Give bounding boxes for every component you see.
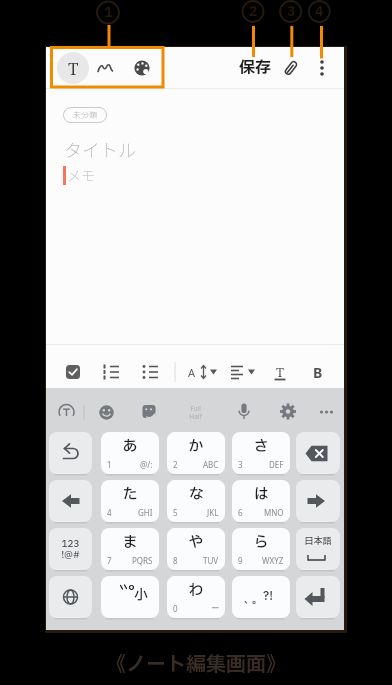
button[interactable]	[232, 400, 256, 424]
button[interactable]	[95, 58, 115, 78]
button[interactable]: ら	[232, 528, 290, 570]
button[interactable]: 123 !@#	[49, 528, 92, 570]
staticText: タイトル	[64, 136, 136, 160]
button[interactable]	[228, 361, 258, 383]
staticText: メモ	[67, 165, 95, 185]
button[interactable]	[139, 361, 161, 383]
staticText: DEF	[269, 459, 284, 470]
staticText: T	[276, 363, 284, 381]
button[interactable]: 、。	[232, 576, 290, 618]
button[interactable]: Full Half	[183, 400, 207, 424]
button[interactable]: は	[232, 480, 290, 522]
button[interactable]	[312, 58, 332, 78]
button[interactable]	[137, 400, 161, 424]
button[interactable]	[100, 361, 122, 383]
staticText: 1	[104, 2, 113, 23]
button[interactable]: ま	[101, 528, 159, 570]
staticText: ら	[253, 531, 269, 553]
button[interactable]	[55, 400, 79, 424]
button[interactable]	[296, 576, 340, 618]
staticText: 日本語	[304, 534, 332, 547]
button[interactable]	[281, 58, 301, 78]
staticText: 123 !@#	[61, 537, 80, 562]
staticText: 2	[249, 2, 258, 22]
button[interactable]	[296, 480, 340, 522]
staticText: 4	[315, 2, 324, 22]
button[interactable]	[95, 400, 119, 424]
staticText: は	[253, 483, 269, 505]
staticText: 、。	[244, 592, 260, 607]
staticText: 9	[238, 555, 243, 566]
staticText: 5	[173, 507, 178, 518]
button[interactable]: T	[269, 361, 291, 383]
staticText: か	[188, 435, 204, 457]
button[interactable]	[296, 432, 340, 474]
button[interactable]	[187, 361, 217, 383]
staticText: GHI	[138, 507, 153, 518]
button[interactable]	[132, 58, 152, 78]
staticText: A	[188, 365, 196, 380]
button[interactable]: 小	[101, 576, 159, 618]
staticText: ま	[122, 531, 138, 553]
button[interactable]: か	[167, 432, 225, 474]
button[interactable]: あ	[101, 432, 159, 474]
staticText: WXYZ	[262, 555, 284, 566]
staticText: わ	[188, 579, 204, 601]
button[interactable]: 日本語	[296, 528, 340, 570]
staticText: 保存	[239, 56, 272, 80]
button[interactable]: わ	[167, 576, 225, 618]
staticText: MNO	[264, 507, 284, 518]
staticText: 小	[134, 585, 148, 605]
button[interactable]	[49, 480, 92, 522]
staticText: PQRS	[132, 555, 153, 566]
button[interactable]	[49, 432, 92, 474]
staticText: 1	[107, 459, 112, 470]
staticText: さ	[253, 435, 269, 457]
staticText: 《ノート編集画面》	[106, 650, 286, 680]
staticText: T	[68, 57, 79, 80]
staticText: ー	[211, 603, 219, 613]
button[interactable]: T	[57, 52, 89, 84]
staticText: 6	[238, 507, 243, 518]
button[interactable]: さ	[232, 432, 290, 474]
button[interactable]	[62, 361, 84, 383]
button[interactable]	[314, 400, 338, 424]
staticText: 3	[287, 2, 296, 22]
staticText: TUV	[203, 555, 219, 566]
staticText: 7	[107, 555, 112, 566]
staticText: 2	[173, 459, 178, 470]
button[interactable]: た	[101, 480, 159, 522]
button[interactable]	[49, 576, 92, 618]
staticText: や	[188, 531, 204, 553]
staticText: @/:	[140, 459, 153, 470]
staticText: ABC	[203, 459, 219, 470]
button[interactable]: な	[167, 480, 225, 522]
staticText: JKL	[207, 507, 219, 518]
staticText: 8	[173, 555, 178, 566]
staticText: 4	[107, 507, 112, 518]
staticText: Full Half	[189, 404, 202, 421]
staticText: な	[188, 483, 204, 505]
staticText: 3	[238, 459, 243, 470]
staticText: あ	[122, 435, 138, 457]
staticText: 0	[173, 603, 178, 614]
staticText: 未分類	[73, 109, 97, 121]
staticText: た	[122, 483, 138, 505]
button[interactable]	[276, 400, 300, 424]
staticText: B	[313, 363, 323, 382]
button[interactable]: B	[307, 361, 329, 383]
button[interactable]: や	[167, 528, 225, 570]
button[interactable]: 保存	[234, 56, 276, 80]
button[interactable]: 未分類	[63, 107, 107, 123]
staticText: ?!	[263, 587, 273, 605]
